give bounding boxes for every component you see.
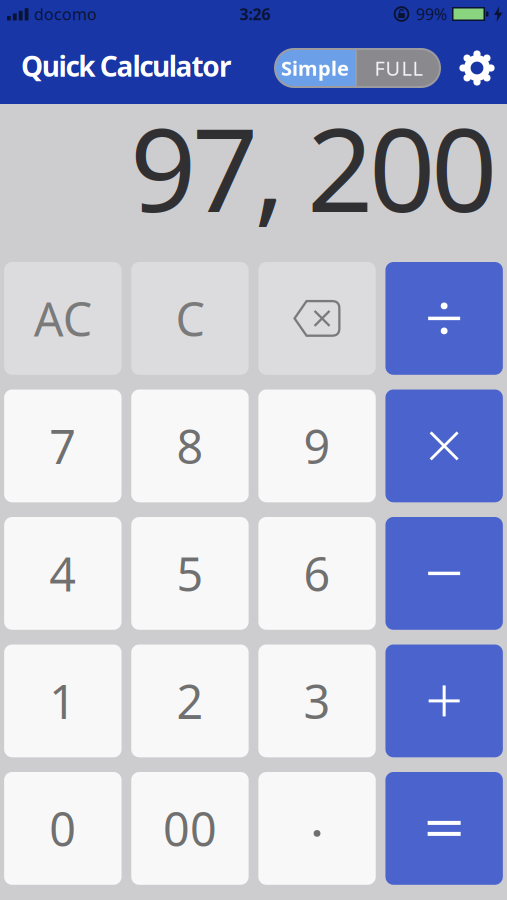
staticText: Quick Calculator [21, 47, 232, 85]
button[interactable]: Settings [440, 50, 507, 86]
staticText: 3 [304, 670, 331, 732]
staticText: C [175, 287, 204, 349]
button[interactable]: 4 [4, 517, 121, 630]
button[interactable]: AC [4, 262, 121, 375]
staticText: 1 [49, 670, 76, 732]
staticText: 99% [416, 3, 447, 25]
button[interactable]: Multiply [385, 389, 503, 502]
button[interactable]: 1 [4, 644, 121, 757]
button[interactable]: FULL [357, 49, 440, 87]
staticText: 5 [176, 542, 203, 604]
staticText: 7 [49, 415, 76, 477]
staticText: 4 [49, 542, 76, 604]
button[interactable]: Decimal point [258, 772, 376, 885]
staticText: 3:26 [239, 3, 270, 25]
button[interactable]: Add [385, 644, 503, 757]
button[interactable]: 9 [258, 389, 376, 502]
button[interactable]: Equals [385, 772, 503, 885]
staticText: FULL [374, 55, 422, 81]
button[interactable]: Simple [275, 49, 355, 87]
staticText: 97, 200 [130, 90, 497, 244]
staticText: 2 [176, 670, 203, 732]
button[interactable]: 3 [258, 644, 376, 757]
button[interactable]: 2 [131, 644, 249, 757]
button[interactable]: 0 [4, 772, 121, 885]
staticText: docomo [34, 3, 97, 25]
staticText: Simple [281, 55, 349, 81]
button[interactable]: Backspace [258, 262, 376, 375]
button[interactable]: Subtract [385, 517, 503, 630]
button[interactable]: C [131, 262, 249, 375]
button[interactable]: 8 [131, 389, 249, 502]
staticText: 00 [163, 797, 217, 859]
staticText: AC [34, 287, 92, 349]
button[interactable]: Divide [385, 262, 503, 375]
staticText: 9 [304, 415, 331, 477]
staticText: 8 [176, 415, 203, 477]
staticText: 6 [304, 542, 331, 604]
staticText: 0 [49, 797, 76, 859]
button[interactable]: 6 [258, 517, 376, 630]
button[interactable]: 7 [4, 389, 121, 502]
button[interactable]: 00 [131, 772, 249, 885]
button[interactable]: 5 [131, 517, 249, 630]
